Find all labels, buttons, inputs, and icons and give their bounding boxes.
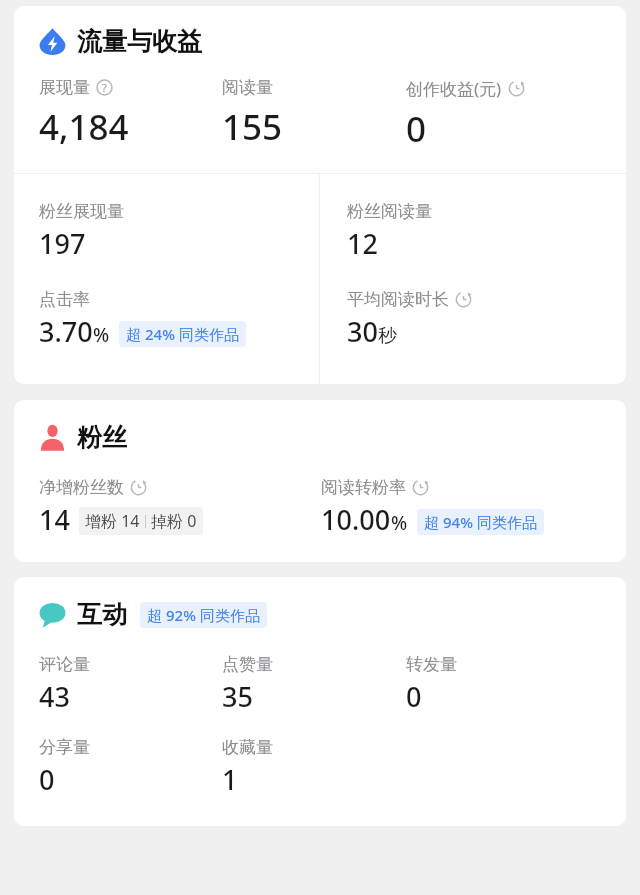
staticText: 评论量	[39, 654, 90, 675]
staticText: 43	[39, 678, 70, 715]
staticText: 4,184	[39, 103, 129, 151]
staticText: 平均阅读时长	[347, 289, 449, 310]
staticText: 0	[39, 761, 55, 798]
staticText: 粉丝阅读量	[347, 201, 432, 222]
button[interactable]: 展现量	[39, 77, 129, 151]
staticText: 同类作品	[175, 324, 239, 344]
staticText: 阅读转粉率	[321, 477, 406, 498]
staticText: 转发量	[406, 654, 457, 675]
button[interactable]: 超	[119, 321, 246, 347]
button[interactable]: 流量与收益	[39, 26, 202, 57]
staticText: 流量与收益	[77, 26, 202, 57]
staticText: 24%	[145, 324, 175, 344]
staticText: 0	[406, 105, 427, 153]
button[interactable]: 点击率	[39, 289, 246, 350]
button[interactable]: 评论量	[39, 654, 90, 715]
button[interactable]: 创作收益(元)	[406, 77, 525, 153]
staticText: 10.00	[321, 501, 391, 538]
staticText: 增粉 14	[85, 510, 140, 532]
staticText: 粉丝	[77, 422, 127, 453]
button[interactable]: 阅读量	[222, 77, 283, 151]
button[interactable]: 净增粉丝数	[39, 477, 203, 538]
staticText: 197	[39, 225, 86, 262]
staticText: 点击率	[39, 289, 90, 310]
other: 互动	[39, 601, 66, 628]
staticText: 阅读量	[222, 77, 273, 98]
staticText: 155	[222, 103, 283, 151]
button[interactable]: 平均阅读时长	[347, 289, 472, 350]
staticText: 12	[347, 225, 378, 262]
button[interactable]: 粉丝阅读量	[347, 201, 432, 262]
staticText: 14	[39, 501, 70, 538]
button[interactable]: 粉丝	[39, 422, 127, 453]
staticText: 粉丝展现量	[39, 201, 124, 222]
staticText: %	[93, 322, 110, 348]
staticText: 创作收益(元)	[406, 77, 502, 100]
button[interactable]: 点赞量	[222, 654, 273, 715]
staticText: 超	[424, 512, 443, 532]
staticText: 35	[222, 678, 253, 715]
staticText: 3.70	[39, 313, 93, 350]
staticText: 超	[147, 605, 166, 625]
button[interactable]: 互动	[39, 599, 267, 630]
button[interactable]: 转发量	[406, 654, 457, 715]
button[interactable]: 超	[140, 602, 267, 628]
staticText: 1	[222, 761, 238, 798]
staticText: 点赞量	[222, 654, 273, 675]
button[interactable]: 收藏量	[222, 737, 273, 798]
staticText: 92%	[166, 605, 196, 625]
other: 流量与收益	[39, 28, 66, 55]
staticText: 超	[126, 324, 145, 344]
staticText: 94%	[443, 512, 473, 532]
button[interactable]: 粉丝展现量	[39, 201, 124, 262]
staticText: 秒	[378, 324, 397, 348]
staticText: 展现量	[39, 77, 90, 98]
staticText: 掉粉 0	[151, 510, 197, 532]
staticText: ?	[102, 80, 107, 95]
staticText: 同类作品	[196, 605, 260, 625]
staticText: 收藏量	[222, 737, 273, 758]
staticText: 净增粉丝数	[39, 477, 124, 498]
staticText: 0	[406, 678, 422, 715]
button[interactable]: 超	[417, 509, 544, 535]
staticText: 分享量	[39, 737, 90, 758]
button[interactable]: 阅读转粉率	[321, 477, 544, 538]
button[interactable]: 分享量	[39, 737, 90, 798]
staticText: %	[391, 510, 408, 536]
staticText: 30	[347, 313, 378, 350]
button[interactable]: 增粉 14	[79, 507, 203, 535]
staticText: 同类作品	[473, 512, 537, 532]
staticText: 互动	[77, 599, 127, 630]
other: 粉丝	[39, 424, 66, 451]
